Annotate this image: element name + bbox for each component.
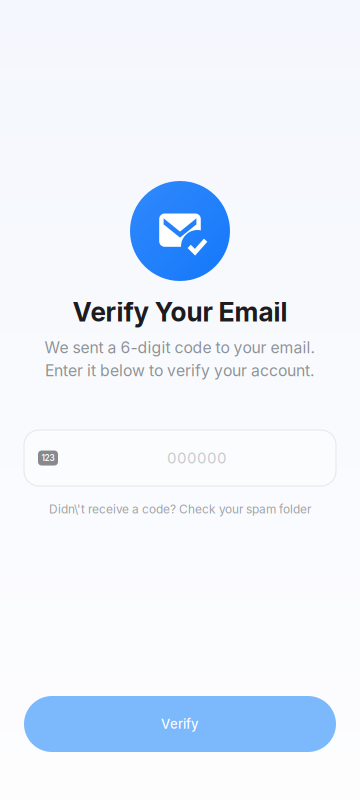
staticText: Enter it below to verify your account. — [45, 361, 315, 380]
staticText: Verify — [161, 716, 199, 732]
staticText: Verify Your Email — [72, 296, 287, 328]
staticText: 123 — [41, 453, 54, 463]
staticText: Didn\'t receive a code? Check your spam … — [49, 502, 311, 516]
staticText: We sent a 6-digit code to your email. — [44, 338, 315, 357]
button[interactable]: Verify — [24, 696, 336, 752]
staticText: 000000 — [167, 449, 227, 467]
